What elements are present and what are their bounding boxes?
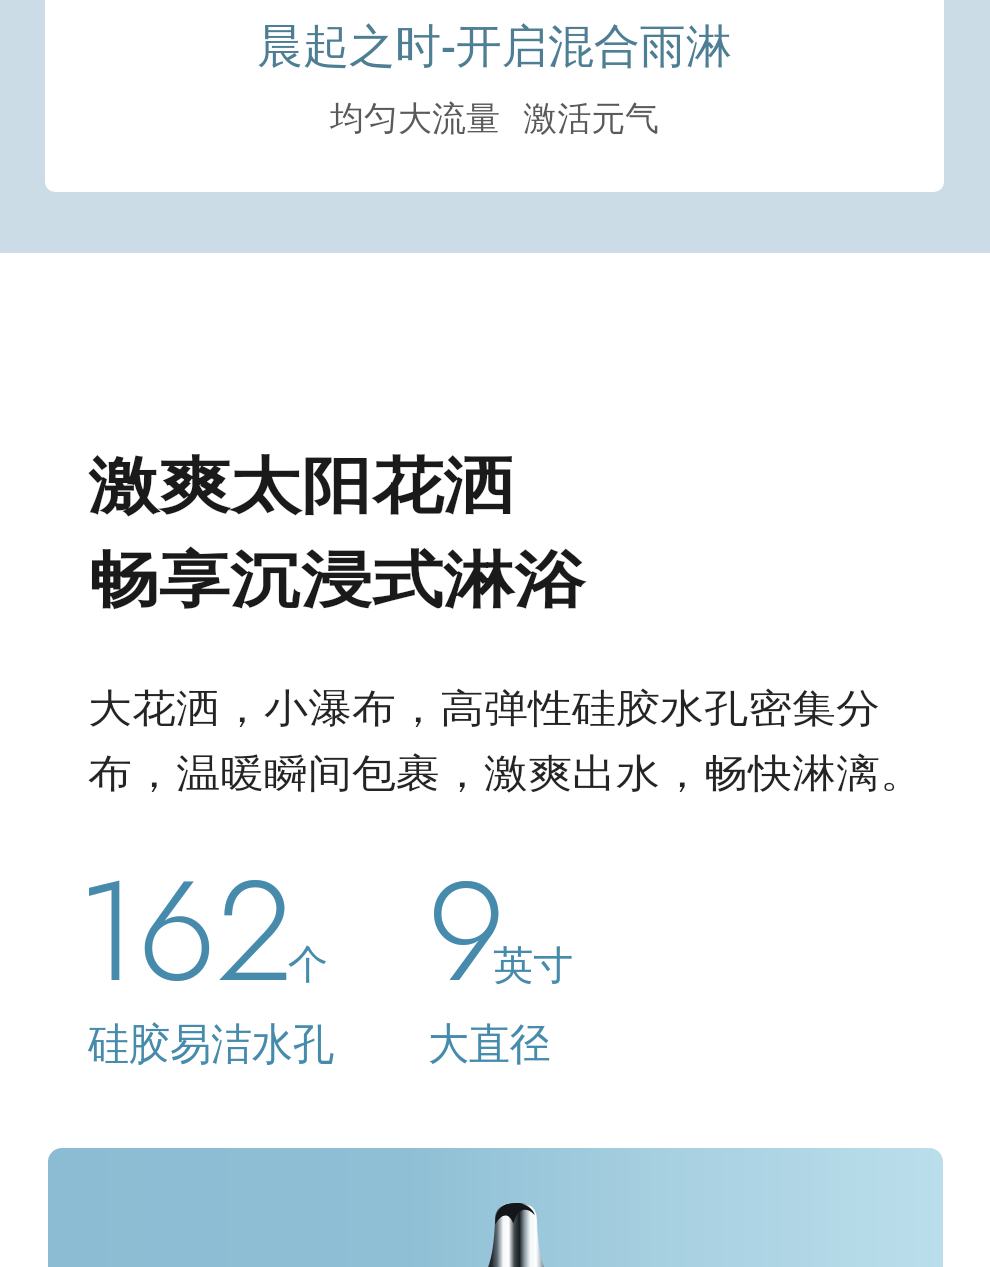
staticText: 晨起之时-开启混合雨淋 bbox=[257, 13, 732, 76]
button[interactable]: 晨起之时-开启混合雨淋 bbox=[45, 0, 944, 192]
staticText: 硅胶易洁水孔 bbox=[88, 1018, 334, 1073]
staticText: 162 bbox=[77, 830, 293, 1032]
staticText: 9 bbox=[427, 830, 506, 1032]
staticText: 畅享沉浸式淋浴 bbox=[88, 543, 585, 619]
staticText: 个 bbox=[288, 939, 328, 989]
staticText: 布，温暖瞬间包裹，激爽出水，畅快淋漓。 bbox=[88, 749, 924, 798]
staticText: 大花洒，小瀑布，高弹性硅胶水孔密集分 bbox=[88, 684, 880, 733]
button[interactable]: 产品图片 - 花洒 bbox=[48, 1148, 943, 1267]
staticText: 均匀大流量 激活元气 bbox=[330, 94, 660, 140]
staticText: 激爽太阳花洒 bbox=[88, 449, 514, 525]
staticText: 英寸 bbox=[493, 940, 573, 990]
staticText: 大直径 bbox=[428, 1018, 551, 1073]
